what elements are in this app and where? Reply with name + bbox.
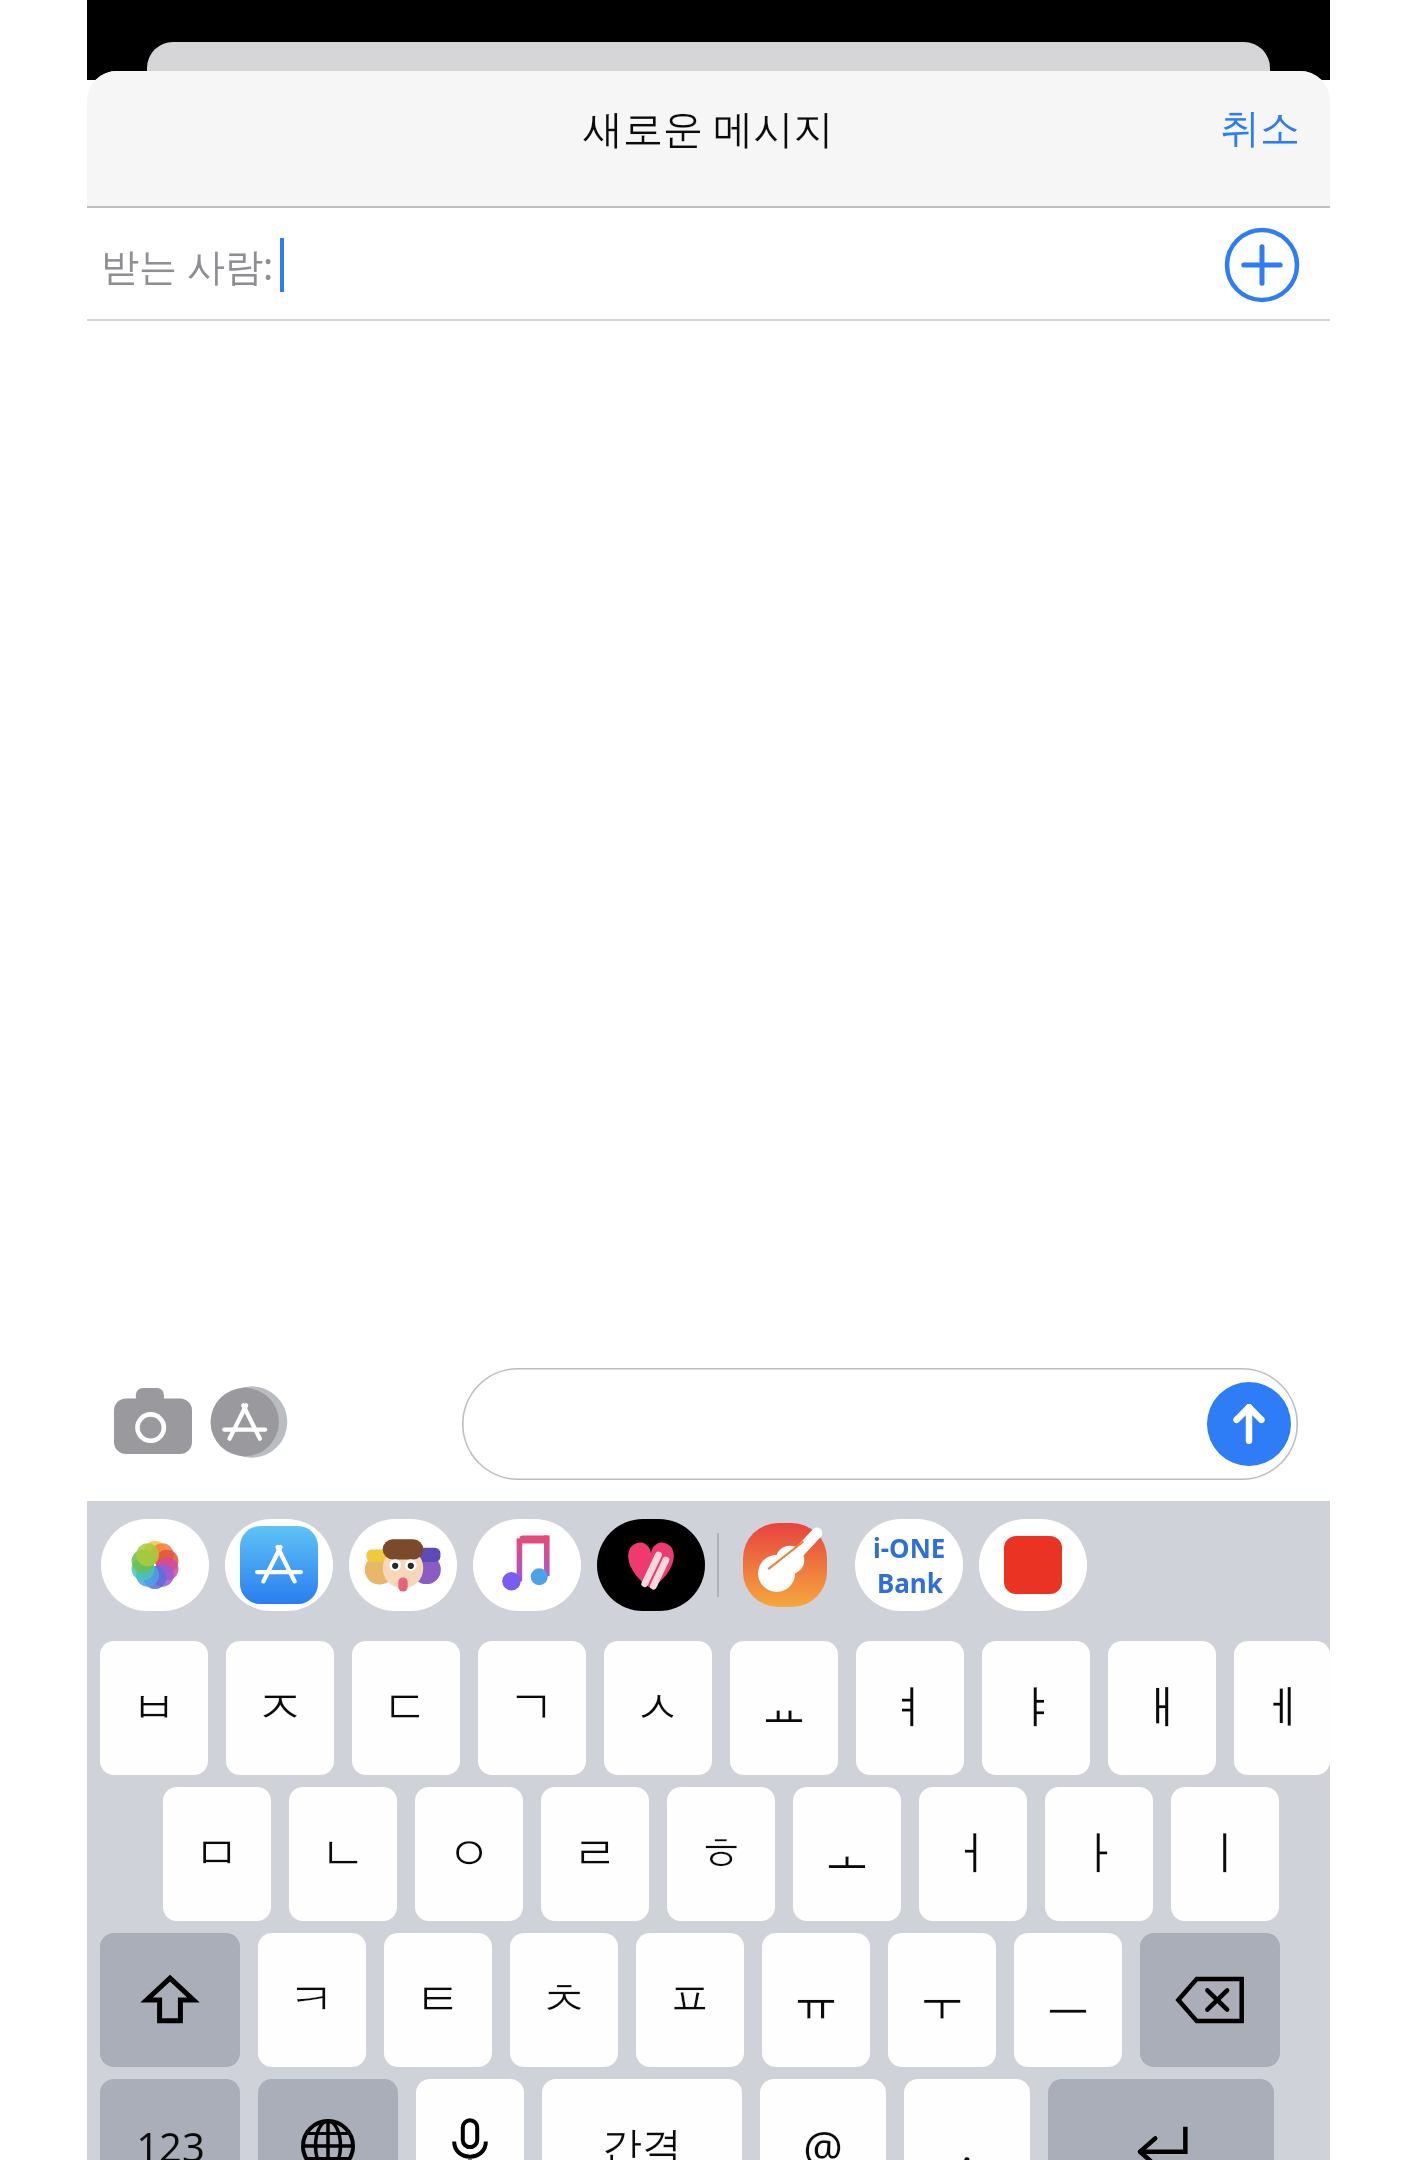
staticText: @ [803, 2116, 843, 2160]
staticText: ㅈ [257, 1679, 303, 1737]
staticText: ㅌ [415, 1971, 461, 2029]
button[interactable]: App [225, 1519, 333, 1611]
staticText: ㅎ [698, 1825, 744, 1883]
button[interactable]: Add recipient [1224, 227, 1300, 303]
button[interactable]: Camera [114, 1388, 192, 1454]
button[interactable]: ㅋ [258, 1933, 366, 2067]
button[interactable]: ㅣ [1171, 1787, 1279, 1921]
staticText: ㄴ [320, 1825, 366, 1883]
button[interactable]: 간격 [542, 2079, 742, 2160]
button[interactable]: 취소 [1190, 93, 1330, 163]
staticText: ㅗ [824, 1825, 870, 1883]
button[interactable]: ㅏ [1045, 1787, 1153, 1921]
button[interactable]: ㅎ [667, 1787, 775, 1921]
staticText: i-ONE [873, 1530, 946, 1565]
staticText: ㅣ [1202, 1825, 1248, 1883]
staticText: ㅂ [131, 1679, 177, 1737]
staticText: ㅋ [289, 1971, 335, 2029]
button[interactable]: @ [760, 2079, 886, 2160]
button[interactable]: ㅛ [730, 1641, 838, 1775]
button[interactable]: ㄱ [478, 1641, 586, 1775]
staticText: ㅇ [446, 1825, 492, 1883]
button[interactable]: ㄹ [541, 1787, 649, 1921]
staticText: ㅡ [1045, 1971, 1091, 2029]
button[interactable]: ㅓ [919, 1787, 1027, 1921]
button[interactable]: App [349, 1519, 457, 1611]
button[interactable]: ㅍ [636, 1933, 744, 2067]
button[interactable]: Switch keyboard [258, 2079, 398, 2160]
button[interactable]: App [979, 1519, 1087, 1611]
button[interactable]: App [731, 1519, 839, 1611]
button[interactable]: Shift [100, 1933, 240, 2067]
button[interactable]: ㅁ [163, 1787, 271, 1921]
button[interactable]: App [597, 1519, 705, 1611]
staticText: 취소 [1220, 103, 1300, 153]
button[interactable]: ㄷ [352, 1641, 460, 1775]
button[interactable]: ㅌ [384, 1933, 492, 2067]
button[interactable]: App [855, 1519, 963, 1611]
staticText: ㅍ [667, 1971, 713, 2029]
staticText: ㅁ [194, 1825, 240, 1883]
staticText: ㅅ [635, 1679, 681, 1737]
button[interactable]: ㅗ [793, 1787, 901, 1921]
button[interactable]: Backspace [1140, 1933, 1280, 2067]
staticText: ㅑ [1013, 1679, 1059, 1737]
staticText: ㅜ [919, 1971, 965, 2029]
staticText: ㅠ [793, 1971, 839, 2029]
staticText: ㄱ [509, 1679, 555, 1737]
staticText: ㅏ [1076, 1825, 1122, 1883]
staticText: 받는 사람: [101, 239, 274, 291]
staticText: ㅕ [887, 1679, 933, 1737]
staticText: 123 [136, 2119, 205, 2160]
button[interactable]: ㅑ [982, 1641, 1090, 1775]
button[interactable]: ㅅ [604, 1641, 712, 1775]
staticText: ㄹ [572, 1825, 618, 1883]
button[interactable]: App [473, 1519, 581, 1611]
staticText: 새로운 메시지 [583, 100, 834, 155]
button[interactable]: Dictate [416, 2079, 524, 2160]
button[interactable]: ㅕ [856, 1641, 964, 1775]
button[interactable]: ㅊ [510, 1933, 618, 2067]
staticText: ㅐ [1139, 1679, 1185, 1737]
staticText: . [961, 2116, 973, 2160]
staticText: ㅊ [541, 1971, 587, 2029]
staticText: ㅓ [950, 1825, 996, 1883]
button[interactable]: Send [1207, 1382, 1291, 1466]
button[interactable]: App [101, 1519, 209, 1611]
button[interactable]: 123 [100, 2079, 240, 2160]
button[interactable]: ㅔ [1234, 1641, 1330, 1775]
staticText: 간격 [602, 2121, 682, 2160]
button[interactable]: Send [462, 1368, 1298, 1480]
button[interactable]: ㅇ [415, 1787, 523, 1921]
staticText: ㅛ [761, 1679, 807, 1737]
staticText: Bank [877, 1565, 943, 1600]
button[interactable]: ㅂ [100, 1641, 208, 1775]
button[interactable]: ㅡ [1014, 1933, 1122, 2067]
button[interactable]: App Store [209, 1384, 285, 1460]
staticText: ㄷ [383, 1679, 429, 1737]
button[interactable]: ㅈ [226, 1641, 334, 1775]
button[interactable]: ㅜ [888, 1933, 996, 2067]
button[interactable]: ㅠ [762, 1933, 870, 2067]
button[interactable]: Return [1048, 2079, 1274, 2160]
staticText: ㅔ [1259, 1679, 1305, 1737]
button[interactable]: ㅐ [1108, 1641, 1216, 1775]
button[interactable]: . [904, 2079, 1030, 2160]
button[interactable]: ㄴ [289, 1787, 397, 1921]
